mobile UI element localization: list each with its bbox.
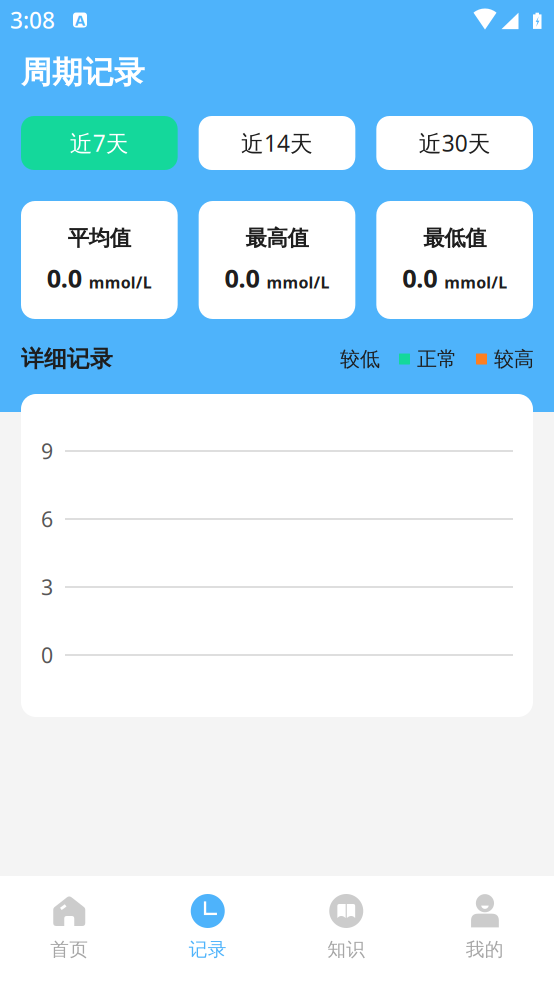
staticText: 近7天 xyxy=(70,128,129,158)
staticText: 最高值 xyxy=(245,225,308,251)
staticText: mmol/L xyxy=(89,272,152,293)
staticText: 6 xyxy=(41,505,53,533)
staticText: 详细记录 xyxy=(21,345,113,373)
staticText: 较高 xyxy=(494,347,534,371)
staticText: 周期记录 xyxy=(21,54,145,91)
staticText: 0.0 xyxy=(224,261,259,295)
staticText: 最低值 xyxy=(423,225,486,251)
staticText: 3:08 xyxy=(10,5,55,35)
staticText: mmol/L xyxy=(266,272,329,293)
staticText: 0.0 xyxy=(47,261,82,295)
staticText: 首页 xyxy=(50,938,88,961)
button[interactable]: 知识 xyxy=(277,876,415,984)
staticText: 平均值 xyxy=(68,225,131,251)
staticText: 记录 xyxy=(189,938,227,961)
staticText: A xyxy=(75,10,85,30)
staticText: 知识 xyxy=(327,938,365,961)
button[interactable]: 近30天 xyxy=(376,116,533,170)
staticText: 3 xyxy=(41,573,53,601)
button[interactable]: 我的 xyxy=(415,876,554,984)
staticText: 较低 xyxy=(340,347,380,371)
button[interactable]: 记录 xyxy=(138,876,277,984)
staticText: 正常 xyxy=(417,347,457,371)
staticText: 9 xyxy=(41,437,53,465)
staticText: mmol/L xyxy=(444,272,507,293)
button[interactable]: 近7天 xyxy=(21,116,178,170)
button[interactable]: 首页 xyxy=(0,876,138,984)
staticText: 0.0 xyxy=(402,261,437,295)
staticText: 近14天 xyxy=(241,128,313,158)
button[interactable]: 近14天 xyxy=(199,116,355,170)
staticText: 我的 xyxy=(466,938,504,961)
staticText: 近30天 xyxy=(419,128,491,158)
staticText: 0 xyxy=(41,641,53,669)
